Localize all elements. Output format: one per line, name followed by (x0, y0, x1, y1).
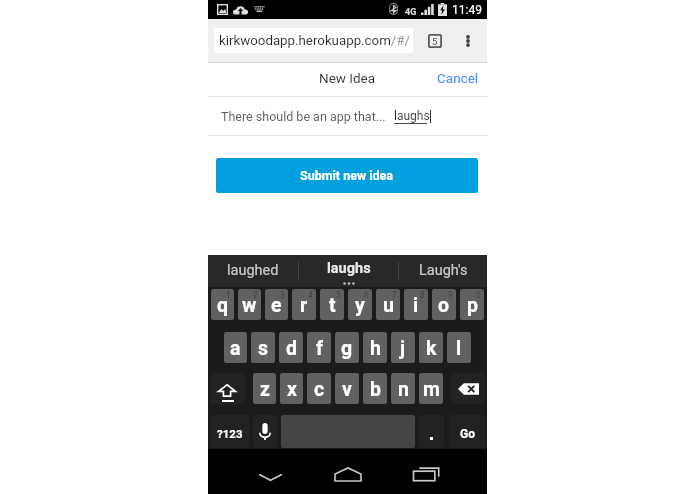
staticText: There should be an app that... (221, 109, 386, 124)
staticText: v (342, 378, 352, 401)
staticText: 6 (364, 290, 369, 300)
staticText: i (413, 294, 419, 317)
button[interactable]: z (253, 373, 276, 404)
button[interactable]: p (460, 289, 484, 320)
button[interactable]: kirkwoodapp.herokuapp.com/#/ (214, 28, 413, 53)
staticText: laughs (327, 260, 371, 277)
staticText: 4G (405, 7, 417, 18)
staticText: 7 (392, 290, 397, 300)
staticText: Cancel (437, 70, 479, 86)
button[interactable]: v (335, 373, 359, 404)
button[interactable]: i (404, 289, 428, 320)
button[interactable]: laughs (299, 255, 399, 287)
staticText: h (370, 337, 381, 360)
button[interactable]: Back (250, 458, 290, 494)
button[interactable]: Shift (210, 373, 245, 404)
staticText: q (217, 294, 229, 317)
button[interactable]: m (419, 373, 443, 404)
staticText: 11:49 (452, 3, 482, 17)
staticText: p (467, 294, 478, 317)
button[interactable]: h (363, 332, 387, 363)
staticText: l (456, 337, 462, 360)
button[interactable]: Voice input (253, 415, 277, 448)
button[interactable]: u (376, 289, 400, 320)
staticText: New Idea (319, 70, 376, 86)
staticText: e (271, 294, 282, 317)
button[interactable]: w (238, 289, 261, 320)
button[interactable]: q (211, 289, 234, 320)
button[interactable]: More options (450, 23, 486, 59)
button[interactable]: Tabs (417, 23, 453, 59)
staticText: 0 (476, 290, 481, 300)
staticText: k (426, 337, 437, 360)
staticText: z (260, 378, 270, 401)
staticText: Go (460, 427, 475, 441)
staticText: j (400, 337, 406, 360)
staticText: 5 (336, 290, 341, 300)
staticText: 4 (308, 290, 313, 300)
staticText: o (438, 294, 450, 317)
staticText: 5 (432, 36, 438, 47)
button[interactable]: c (307, 373, 331, 404)
staticText: r (300, 294, 308, 317)
button[interactable]: o (432, 289, 456, 320)
button[interactable]: Home (328, 455, 368, 493)
staticText: 3 (280, 290, 285, 300)
staticText: ?123 (217, 427, 243, 440)
staticText: d (286, 337, 297, 360)
staticText: Laugh's (419, 262, 468, 279)
staticText: Submit new idea (300, 168, 394, 183)
staticText: 2 (253, 290, 258, 300)
staticText: m (423, 378, 440, 401)
button[interactable]: r (292, 289, 316, 320)
staticText: 1 (226, 290, 231, 300)
button[interactable]: Submit new idea (216, 158, 478, 193)
staticText: b (370, 378, 381, 401)
button[interactable]: l (447, 332, 471, 363)
button[interactable]: laughed (208, 255, 298, 287)
staticText: f (316, 337, 323, 360)
button[interactable]: b (363, 373, 387, 404)
button[interactable]: There should be an app that... (208, 97, 487, 135)
staticText: w (242, 294, 257, 317)
staticText: 8 (420, 290, 425, 300)
staticText: n (398, 378, 409, 401)
staticText: y (355, 294, 365, 317)
button[interactable]: d (279, 332, 303, 363)
staticText: kirkwoodapp.herokuapp.com/#/ (219, 33, 410, 49)
button[interactable]: Cancel (427, 62, 487, 96)
staticText: t (329, 294, 336, 317)
button[interactable]: ?123 (210, 415, 250, 448)
button[interactable]: s (251, 332, 275, 363)
staticText: c (314, 378, 325, 401)
staticText: x (287, 378, 297, 401)
button[interactable]: k (419, 332, 443, 363)
staticText: u (383, 294, 394, 317)
staticText: 9 (448, 290, 453, 300)
button[interactable]: e (265, 289, 288, 320)
staticText: laughs (394, 109, 430, 123)
button[interactable]: a (224, 332, 247, 363)
staticText: a (230, 337, 241, 360)
button[interactable]: x (280, 373, 303, 404)
button[interactable]: Recents (406, 455, 446, 493)
staticText: g (341, 337, 353, 360)
button[interactable]: y (348, 289, 372, 320)
button[interactable]: g (335, 332, 359, 363)
button[interactable]: f (307, 332, 331, 363)
button[interactable]: j (391, 332, 415, 363)
button[interactable]: t (320, 289, 344, 320)
button[interactable]: Backspace (451, 373, 485, 404)
button[interactable] (419, 415, 444, 448)
button[interactable]: Laugh's (399, 255, 487, 287)
staticText: s (258, 337, 269, 360)
button[interactable]: Go (449, 415, 485, 448)
staticText: laughed (227, 262, 279, 279)
button[interactable]: n (391, 373, 415, 404)
